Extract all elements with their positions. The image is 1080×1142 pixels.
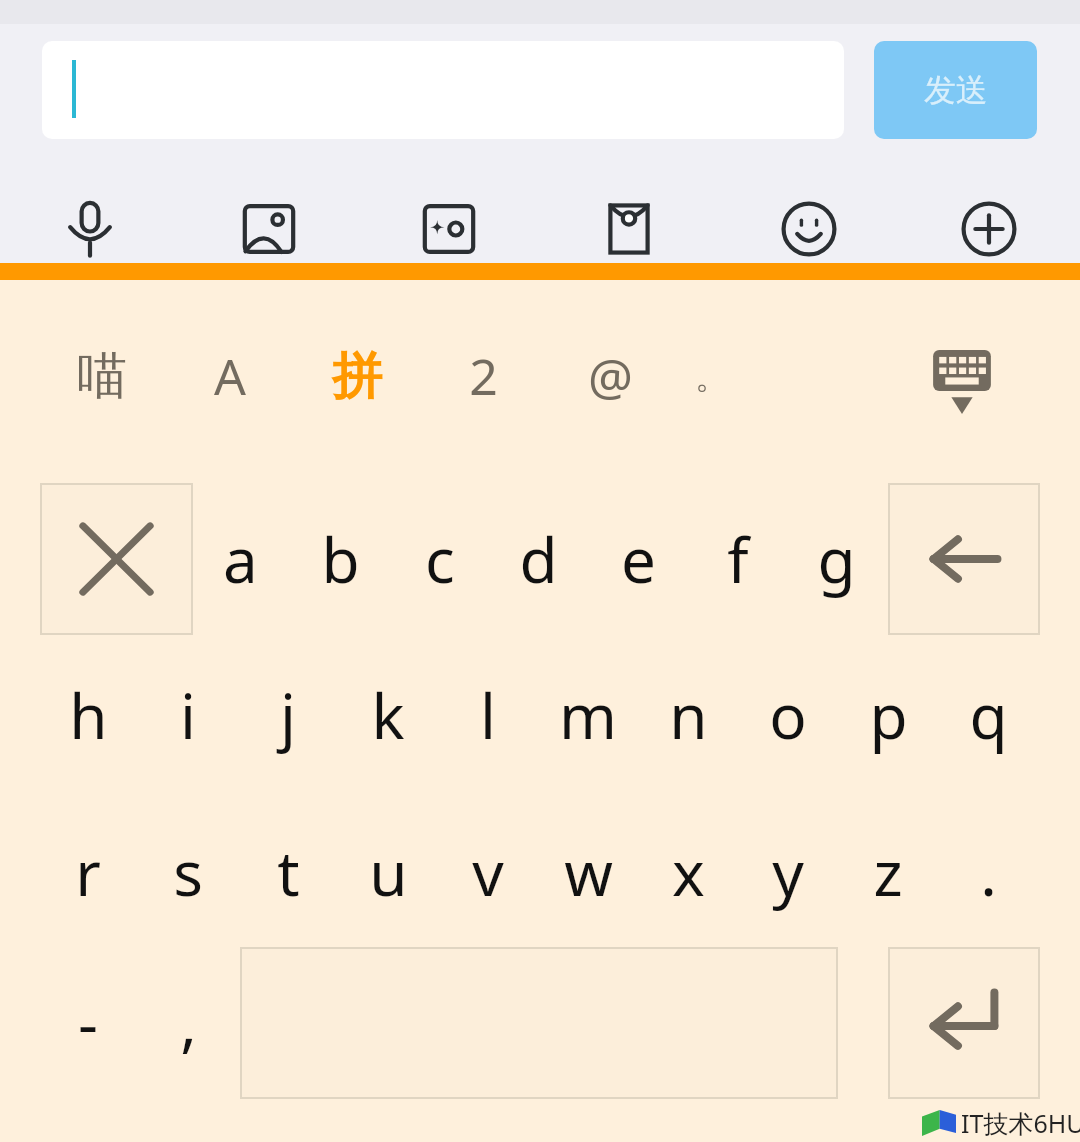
staticText: l [480, 673, 496, 757]
staticText: k [371, 673, 405, 757]
staticText: A [214, 342, 246, 410]
staticText: x [672, 830, 705, 914]
staticText: b [321, 517, 360, 601]
staticText: 2 [469, 342, 498, 410]
staticText: v [472, 830, 504, 914]
button[interactable]: o [740, 667, 836, 763]
staticText: e [621, 517, 656, 601]
button[interactable]: p [840, 667, 936, 763]
staticText: 拼 [332, 345, 382, 408]
staticText: n [669, 673, 708, 757]
staticText: c [425, 517, 455, 601]
button[interactable] [42, 41, 844, 139]
button[interactable]: x [640, 824, 736, 920]
staticText: j [280, 673, 296, 757]
button[interactable]: i [140, 667, 236, 763]
button[interactable]: 2 [439, 332, 527, 420]
button[interactable]: Clear [40, 483, 193, 635]
button[interactable]: d [490, 511, 586, 607]
button[interactable]: s [140, 824, 236, 920]
button[interactable]: 喵 [58, 332, 146, 420]
button[interactable]: g [788, 511, 884, 607]
button[interactable]: Photo [224, 184, 314, 274]
button[interactable]: More [944, 184, 1034, 274]
staticText: . [980, 830, 997, 914]
button[interactable]: b [292, 511, 388, 607]
staticText: a [223, 517, 258, 601]
staticText: m [559, 673, 617, 757]
button[interactable]: y [740, 824, 836, 920]
button[interactable]: j [240, 667, 336, 763]
staticText: r [75, 830, 101, 914]
staticText: p [869, 673, 908, 757]
button[interactable]: n [640, 667, 736, 763]
button[interactable]: k [340, 667, 436, 763]
button[interactable]: Sticker [404, 184, 494, 274]
button[interactable]: 拼 [313, 332, 401, 420]
button[interactable]: - [40, 974, 136, 1070]
button[interactable]: u [340, 824, 436, 920]
button[interactable]: Backspace [888, 483, 1040, 635]
button[interactable]: 。 [668, 332, 756, 420]
button[interactable]: a [192, 511, 288, 607]
staticText: q [969, 673, 1008, 757]
button[interactable]: m [540, 667, 636, 763]
staticText: f [727, 517, 749, 601]
button[interactable]: e [590, 511, 686, 607]
button[interactable]: w [540, 824, 636, 920]
staticText: h [69, 673, 108, 757]
staticText: t [277, 830, 300, 914]
staticText: y [772, 830, 804, 914]
button[interactable]: v [440, 824, 536, 920]
staticText: u [369, 830, 408, 914]
button[interactable]: 发送 [874, 41, 1037, 139]
staticText: 发送 [924, 70, 988, 110]
button[interactable]: z [840, 824, 936, 920]
staticText: z [873, 830, 903, 914]
staticText: , [180, 980, 197, 1064]
staticText: g [817, 517, 856, 601]
staticText: @ [588, 342, 633, 410]
button[interactable]: Space [240, 947, 838, 1099]
staticText: s [173, 830, 203, 914]
staticText: - [78, 980, 98, 1064]
button[interactable]: Voice input [45, 184, 135, 274]
button[interactable]: , [140, 974, 236, 1070]
button[interactable]: l [440, 667, 536, 763]
staticText: i [180, 673, 196, 757]
button[interactable]: t [240, 824, 336, 920]
staticText: o [769, 673, 807, 757]
staticText: d [519, 517, 558, 601]
staticText: IT技术6HU [961, 1106, 1080, 1140]
button[interactable]: Enter [888, 947, 1040, 1099]
button[interactable]: c [392, 511, 488, 607]
staticText: 。 [695, 355, 729, 398]
button[interactable]: f [690, 511, 786, 607]
button[interactable]: A [186, 332, 274, 420]
button[interactable]: q [940, 667, 1036, 763]
button[interactable]: r [40, 824, 136, 920]
staticText: w [564, 830, 613, 914]
button[interactable]: Red packet [584, 184, 674, 274]
button[interactable]: Hide keyboard [918, 338, 1006, 426]
staticText: 喵 [77, 345, 127, 408]
button[interactable]: @ [566, 332, 654, 420]
button[interactable]: Emoji [764, 184, 854, 274]
button[interactable]: . [940, 824, 1036, 920]
button[interactable]: h [40, 667, 136, 763]
